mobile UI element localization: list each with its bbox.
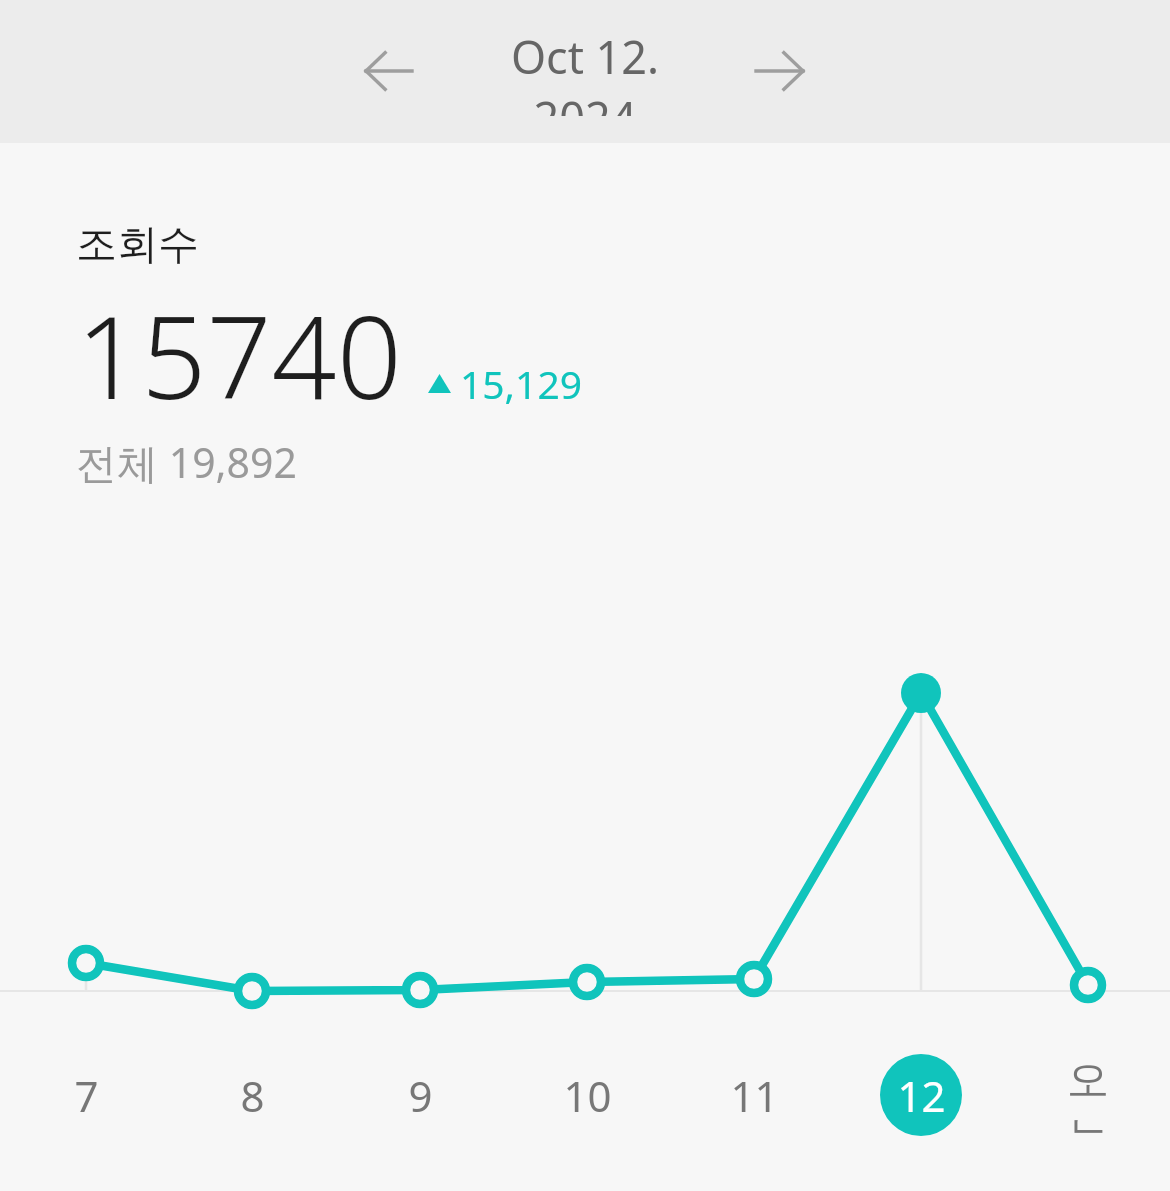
staticText: 8 <box>240 1067 265 1124</box>
staticText: 조회수 <box>76 219 199 271</box>
button[interactable]: 8 <box>211 1054 293 1136</box>
staticText: 12 <box>897 1067 946 1124</box>
button[interactable]: 12 <box>880 1054 962 1136</box>
staticText: 오늘 <box>1047 1054 1129 1136</box>
staticText: 전체 19,892 <box>76 434 297 490</box>
button[interactable]: 11 <box>713 1054 795 1136</box>
button[interactable]: Next day <box>737 28 823 114</box>
staticText: 10 <box>563 1067 612 1124</box>
button[interactable]: Oct 12. 2024 <box>455 26 715 116</box>
button[interactable]: 오늘 <box>1047 1054 1129 1136</box>
staticText: 11 <box>730 1067 779 1124</box>
button[interactable]: 10 <box>546 1054 628 1136</box>
staticText: 15740 <box>76 277 402 432</box>
button[interactable]: 9 <box>379 1054 461 1136</box>
staticText: 15,129 <box>460 357 582 410</box>
button[interactable]: Previous day <box>346 28 432 114</box>
staticText: Oct 12. 2024 <box>455 26 715 116</box>
staticText: 9 <box>408 1067 433 1124</box>
button[interactable]: 7 <box>45 1054 127 1136</box>
staticText: 7 <box>74 1067 99 1124</box>
